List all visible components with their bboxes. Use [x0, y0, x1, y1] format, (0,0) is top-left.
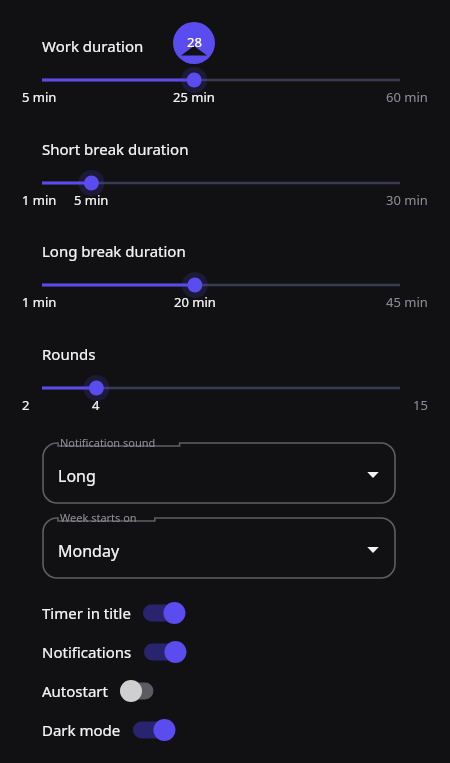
staticText: 60 min	[386, 88, 428, 106]
staticText: 4	[92, 396, 100, 414]
staticText: 25 min	[173, 88, 215, 106]
staticText: Work duration	[42, 36, 144, 56]
staticText: Long break duration	[42, 241, 186, 261]
button[interactable]	[42, 376, 400, 400]
other: Open Notification sound menu	[364, 466, 382, 484]
staticText: 28	[187, 33, 202, 51]
staticText: 15	[413, 396, 428, 414]
staticText: Timer in title	[42, 603, 131, 623]
button[interactable]: Notification sound	[42, 442, 396, 504]
staticText: 20 min	[174, 293, 216, 311]
staticText: 5 min	[22, 88, 57, 106]
staticText: 1 min	[22, 191, 57, 209]
staticText: 5 min	[74, 191, 109, 209]
staticText: 2	[22, 396, 30, 414]
staticText: Notification sound	[60, 435, 156, 450]
button[interactable]: Timer in title	[0, 596, 450, 630]
button[interactable]: 28	[42, 68, 400, 92]
staticText: 1 min	[22, 293, 57, 311]
button[interactable]: Dark mode	[0, 713, 450, 747]
staticText: Long	[58, 465, 96, 487]
button[interactable]: Autostart	[0, 674, 450, 708]
button[interactable]	[42, 171, 400, 195]
button[interactable]	[42, 273, 400, 297]
staticText: Dark mode	[42, 720, 121, 740]
staticText: Rounds	[42, 344, 96, 364]
staticText: Short break duration	[42, 139, 189, 159]
staticText: Notifications	[42, 642, 132, 662]
button[interactable]: Week starts on	[42, 517, 396, 579]
staticText: 45 min	[386, 293, 428, 311]
button[interactable]: Notifications	[0, 635, 450, 669]
staticText: Week starts on	[60, 510, 137, 525]
other: Open Week starts on menu	[364, 541, 382, 559]
staticText: 30 min	[386, 191, 428, 209]
staticText: Autostart	[42, 681, 108, 701]
staticText: Monday	[58, 540, 120, 562]
